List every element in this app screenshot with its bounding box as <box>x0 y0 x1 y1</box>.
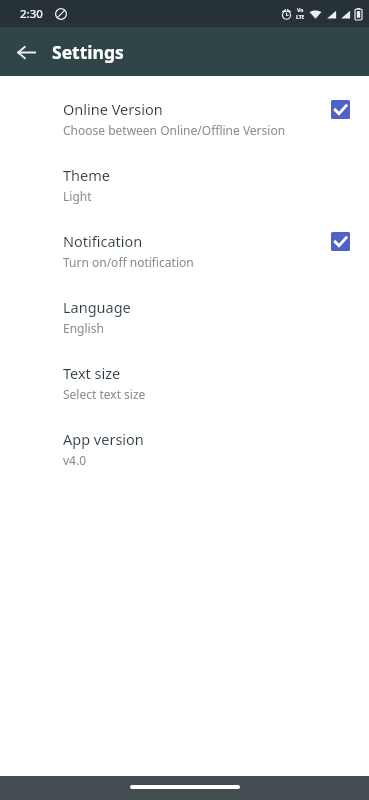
staticText: Choose between Online/Offline Version <box>63 122 286 138</box>
button[interactable]: App version <box>0 425 369 491</box>
staticText: Language <box>63 297 131 317</box>
button[interactable]: Notification toggle <box>331 232 350 251</box>
staticText: 2:30 <box>20 6 43 22</box>
button[interactable]: Back <box>8 34 44 70</box>
staticText: Light <box>63 188 92 204</box>
staticText: Text size <box>63 363 121 383</box>
button[interactable]: Online Version toggle <box>331 100 350 119</box>
button[interactable]: Theme <box>0 161 369 227</box>
staticText: Theme <box>63 165 110 185</box>
staticText: Select text size <box>63 386 146 402</box>
staticText: Settings <box>52 40 124 64</box>
button[interactable]: Home <box>130 785 240 789</box>
staticText: Vo <box>297 7 304 14</box>
staticText: Online Version <box>63 99 163 119</box>
button[interactable]: Online Version <box>0 95 369 161</box>
button[interactable]: Text size <box>0 359 369 425</box>
staticText: App version <box>63 429 144 449</box>
staticText: Turn on/off notification <box>63 254 194 270</box>
button[interactable]: Notification <box>0 227 369 293</box>
staticText: v4.0 <box>63 452 87 468</box>
staticText: English <box>63 320 104 336</box>
staticText: LTE <box>296 14 305 21</box>
button[interactable]: Language <box>0 293 369 359</box>
staticText: Notification <box>63 231 143 251</box>
